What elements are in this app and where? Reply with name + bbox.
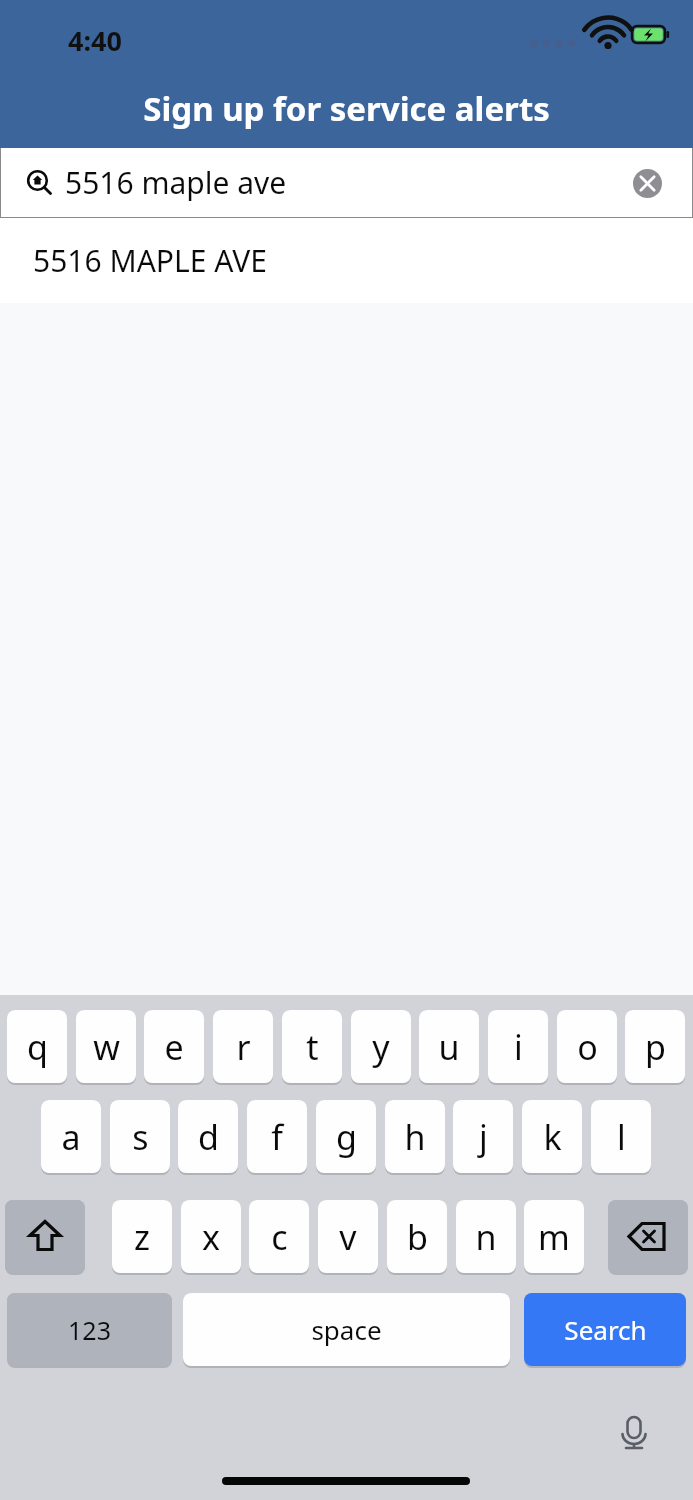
button[interactable]: e — [144, 1010, 204, 1083]
button[interactable]: k — [522, 1100, 582, 1173]
staticText: s — [132, 1114, 149, 1160]
staticText: q — [27, 1024, 48, 1070]
button[interactable]: b — [387, 1200, 447, 1273]
button[interactable]: n — [456, 1200, 516, 1273]
button[interactable]: Voice input — [609, 1407, 659, 1457]
button[interactable]: c — [249, 1200, 309, 1273]
staticText: l — [617, 1114, 626, 1160]
staticText: 4:40 — [68, 22, 122, 59]
staticText: r — [236, 1024, 251, 1070]
button[interactable]: 5516 maple ave — [1, 148, 692, 217]
staticText: o — [577, 1024, 598, 1070]
button[interactable]: w — [76, 1010, 136, 1083]
staticText: 5516 MAPLE AVE — [33, 240, 267, 281]
staticText: c — [271, 1214, 288, 1260]
button[interactable]: 5516 MAPLE AVE — [0, 218, 693, 303]
staticText: t — [306, 1024, 319, 1070]
button[interactable]: p — [625, 1010, 685, 1083]
button[interactable]: i — [488, 1010, 548, 1083]
staticText: g — [336, 1114, 357, 1160]
staticText: e — [164, 1024, 184, 1070]
staticText: u — [438, 1024, 460, 1070]
button[interactable]: space — [183, 1293, 510, 1366]
button[interactable]: v — [318, 1200, 378, 1273]
staticText: b — [407, 1214, 428, 1260]
staticText: d — [198, 1114, 219, 1160]
button[interactable]: d — [178, 1100, 238, 1173]
button[interactable]: z — [112, 1200, 172, 1273]
button[interactable]: h — [385, 1100, 445, 1173]
button[interactable]: l — [591, 1100, 651, 1173]
button[interactable]: g — [316, 1100, 376, 1173]
staticText: n — [475, 1214, 497, 1260]
button[interactable]: Backspace — [608, 1200, 688, 1273]
button[interactable]: q — [7, 1010, 67, 1083]
button[interactable]: s — [110, 1100, 170, 1173]
button[interactable]: a — [41, 1100, 101, 1173]
staticText: k — [543, 1114, 562, 1160]
staticText: x — [202, 1214, 220, 1260]
button[interactable]: y — [351, 1010, 411, 1083]
staticText: z — [134, 1214, 150, 1260]
staticText: y — [372, 1024, 390, 1070]
staticText: p — [645, 1024, 666, 1070]
staticText: w — [93, 1024, 120, 1070]
button[interactable]: j — [453, 1100, 513, 1173]
button[interactable]: x — [181, 1200, 241, 1273]
button[interactable]: Search — [524, 1293, 686, 1366]
button[interactable]: o — [557, 1010, 617, 1083]
button[interactable]: 123 — [7, 1293, 172, 1366]
staticText: v — [339, 1214, 357, 1260]
button[interactable]: r — [213, 1010, 273, 1083]
button[interactable]: Shift — [5, 1200, 85, 1273]
button[interactable]: u — [419, 1010, 479, 1083]
button[interactable]: m — [524, 1200, 584, 1273]
button[interactable]: Clear text — [627, 163, 667, 203]
staticText: space — [311, 1312, 382, 1347]
staticText: 5516 maple ave — [65, 162, 287, 203]
staticText: f — [271, 1114, 283, 1160]
staticText: i — [514, 1024, 523, 1070]
button[interactable]: f — [247, 1100, 307, 1173]
button[interactable]: t — [282, 1010, 342, 1083]
staticText: m — [538, 1214, 570, 1260]
staticText: Sign up for service alerts — [0, 86, 693, 131]
staticText: Search — [564, 1312, 647, 1347]
staticText: 123 — [68, 1313, 111, 1347]
staticText: j — [479, 1114, 488, 1160]
staticText: h — [404, 1114, 426, 1160]
staticText: a — [61, 1114, 81, 1160]
